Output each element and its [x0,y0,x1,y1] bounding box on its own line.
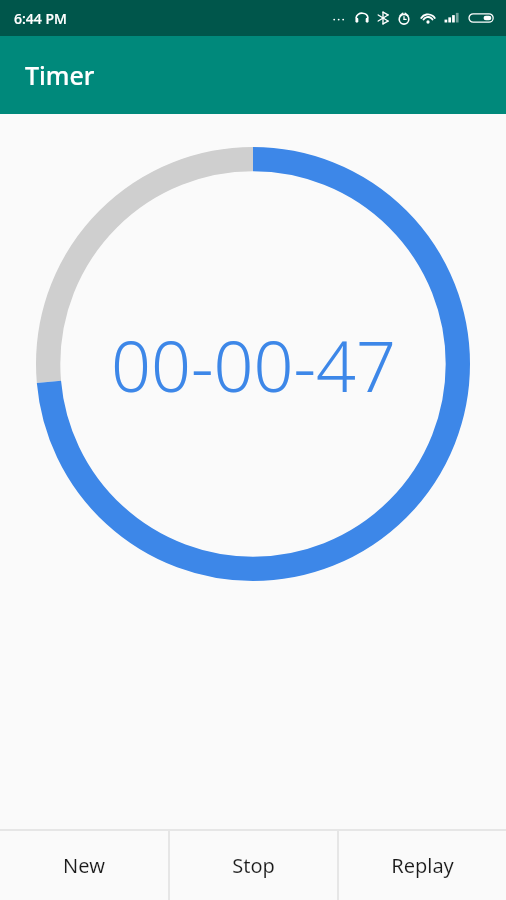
staticText: New [63,852,105,879]
staticText: Replay [391,852,454,879]
staticText: Stop [232,852,275,879]
button[interactable]: Stop [170,831,337,900]
button[interactable]: Replay [339,831,506,900]
staticText: 6:44 PM [14,9,67,28]
button[interactable]: New [0,831,168,900]
staticText: Timer [25,58,95,92]
staticText: 00-00-47 [111,317,396,412]
